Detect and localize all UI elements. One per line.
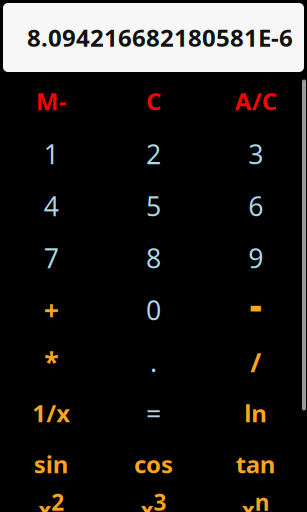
staticText: 7 bbox=[44, 240, 59, 276]
button[interactable]: xn bbox=[205, 480, 307, 512]
staticText: 1/x bbox=[32, 397, 70, 429]
button[interactable]: 0 bbox=[102, 284, 205, 336]
staticText: 6 bbox=[248, 188, 263, 224]
staticText: tan bbox=[236, 448, 276, 480]
staticText: / bbox=[250, 344, 261, 380]
button[interactable]: x3 bbox=[102, 480, 205, 512]
staticText: 0 bbox=[146, 292, 161, 328]
button[interactable]: tan bbox=[205, 438, 307, 490]
staticText: x2 bbox=[38, 487, 64, 512]
button[interactable]: / bbox=[205, 336, 307, 388]
button[interactable]: 8 bbox=[102, 232, 205, 284]
button[interactable]: 4 bbox=[0, 180, 102, 232]
button[interactable]: * bbox=[0, 336, 102, 388]
staticText: x3 bbox=[140, 487, 166, 512]
button[interactable]: . bbox=[102, 336, 205, 388]
staticText: 4 bbox=[44, 188, 59, 224]
button[interactable]: 5 bbox=[102, 180, 205, 232]
button[interactable]: ln bbox=[205, 387, 307, 439]
button[interactable]: = bbox=[102, 387, 205, 439]
staticText: = bbox=[146, 395, 161, 431]
staticText: M- bbox=[36, 85, 67, 117]
button[interactable]: cos bbox=[102, 438, 205, 490]
button[interactable]: + bbox=[0, 284, 102, 336]
button[interactable]: x2 bbox=[0, 480, 102, 512]
staticText: ln bbox=[244, 397, 267, 429]
staticText: + bbox=[44, 292, 59, 328]
button[interactable]: C bbox=[102, 75, 205, 127]
staticText: 8.094216682180581E-6 bbox=[27, 22, 293, 53]
button[interactable]: M- bbox=[0, 75, 102, 127]
button[interactable]: 1 bbox=[0, 128, 102, 180]
staticText: 2 bbox=[146, 136, 161, 172]
button[interactable]: - bbox=[205, 278, 307, 330]
staticText: 1 bbox=[44, 136, 59, 172]
staticText: A/C bbox=[235, 85, 277, 117]
staticText: - bbox=[250, 279, 262, 329]
staticText: 3 bbox=[248, 136, 263, 172]
button[interactable]: A/C bbox=[205, 75, 307, 127]
button[interactable]: sin bbox=[0, 438, 102, 490]
button[interactable]: 9 bbox=[205, 232, 307, 284]
staticText: 8 bbox=[146, 240, 161, 276]
staticText: 9 bbox=[248, 240, 263, 276]
button[interactable]: 1/x bbox=[0, 387, 102, 439]
staticText: * bbox=[44, 344, 58, 380]
button[interactable]: 3 bbox=[205, 128, 307, 180]
staticText: C bbox=[146, 85, 161, 117]
button[interactable]: 6 bbox=[205, 180, 307, 232]
staticText: 5 bbox=[146, 188, 161, 224]
staticText: sin bbox=[34, 448, 69, 480]
button[interactable]: 7 bbox=[0, 232, 102, 284]
button[interactable]: 2 bbox=[102, 128, 205, 180]
staticText: cos bbox=[134, 448, 173, 480]
staticText: xn bbox=[242, 487, 270, 512]
staticText: . bbox=[150, 344, 157, 380]
